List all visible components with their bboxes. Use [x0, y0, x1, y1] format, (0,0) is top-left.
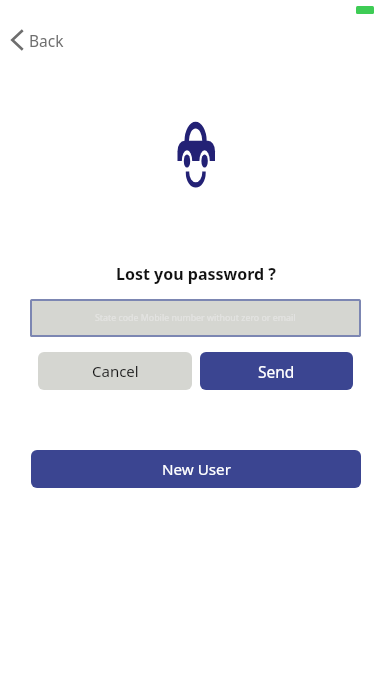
- staticText: Lost you password ?: [116, 263, 276, 285]
- button[interactable]: State code Mobile number without zero or…: [30, 299, 361, 337]
- button[interactable]: Back: [7, 25, 68, 55]
- staticText: Cancel: [92, 361, 139, 381]
- button[interactable]: Cancel: [38, 352, 192, 390]
- staticText: New User: [162, 459, 231, 480]
- staticText: State code Mobile number without zero or…: [95, 312, 296, 324]
- button[interactable]: Send: [200, 352, 353, 390]
- staticText: Back: [29, 30, 64, 51]
- staticText: Send: [258, 361, 295, 382]
- button[interactable]: New User: [31, 450, 361, 488]
